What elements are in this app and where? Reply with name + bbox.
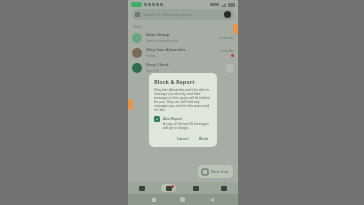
staticText: Block [199, 136, 209, 141]
button[interactable]: Home [128, 182, 155, 194]
staticText: Sales Group [146, 32, 170, 37]
button[interactable]: Back [209, 197, 214, 202]
staticText: Sent an attachment [146, 38, 179, 43]
staticText: Search in chat and spaces [143, 12, 192, 17]
button[interactable]: Home [180, 197, 185, 202]
button[interactable]: Spaces [182, 182, 210, 194]
staticText: You: Ok [146, 68, 159, 73]
button[interactable]: Account [224, 11, 231, 18]
staticText: New chat [211, 169, 229, 174]
staticText: Cancel [177, 136, 189, 141]
button[interactable]: Block [196, 135, 212, 142]
staticText: Chat [133, 24, 141, 29]
staticText: Jan 02 [225, 66, 234, 70]
button[interactable]: Sales Group [128, 30, 238, 45]
staticText: Oleg Ivan Alexander [146, 47, 186, 52]
staticText: Block & Report [154, 78, 195, 85]
staticText: Also Report [163, 116, 183, 121]
staticText: Deep Client [146, 62, 169, 67]
button[interactable]: Deep Client [128, 60, 238, 75]
button[interactable]: Meet [210, 182, 238, 194]
staticText: Oleg Ivan Alexander won't be able to mes… [154, 88, 212, 112]
button[interactable]: Cancel [174, 135, 192, 142]
button[interactable]: Search in chat and spaces [132, 9, 234, 20]
button[interactable]: Chat [155, 182, 182, 194]
staticText: Yesterday [220, 36, 234, 40]
button[interactable]: Scroll to bottom [225, 64, 234, 73]
button[interactable]: Oleg Ivan Alexander [128, 45, 238, 60]
button[interactable]: Also Report [154, 116, 212, 130]
button[interactable]: New chat [198, 165, 233, 178]
staticText: Yesterday [220, 49, 234, 53]
staticText: A copy of the last 50 messages will go t… [163, 122, 212, 130]
staticText: Friday [146, 53, 157, 58]
